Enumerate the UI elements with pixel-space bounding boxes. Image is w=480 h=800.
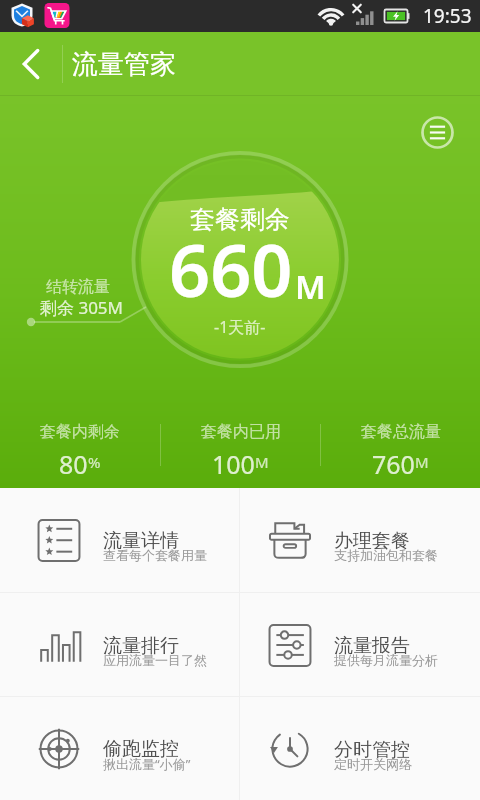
staticText: 80 [59, 447, 88, 474]
button[interactable]: 办理套餐 [240, 488, 480, 592]
staticText: 揪出流量“小偷” [103, 755, 191, 773]
staticText: 支持加油包和套餐 [334, 547, 438, 563]
staticText: 套餐内剩余 [40, 422, 120, 442]
button[interactable]: 流量详情 [0, 488, 239, 592]
button[interactable]: Menu [417, 112, 458, 153]
staticText: M [295, 264, 326, 309]
staticText: 分时管控 [334, 738, 410, 762]
staticText: 套餐总流量 [361, 422, 441, 442]
staticText: 剩余 305M [40, 296, 124, 319]
staticText: 套餐剩余 [190, 204, 290, 235]
staticText: 流量管家 [72, 48, 176, 81]
staticText: 查看每个套餐用量 [103, 547, 207, 563]
staticText: 流量详情 [103, 529, 179, 553]
staticText: 19:53 [423, 3, 472, 29]
staticText: % [88, 452, 101, 472]
staticText: -1天前- [214, 316, 266, 338]
button[interactable]: 套餐内剩余 [0, 422, 160, 474]
staticText: 100 [212, 447, 255, 474]
button[interactable]: 偷跑监控 [0, 697, 239, 800]
button[interactable]: 分时管控 [240, 697, 480, 800]
staticText: 流量报告 [334, 634, 410, 658]
button[interactable]: 流量报告 [240, 593, 480, 696]
staticText: 应用流量一目了然 [103, 652, 207, 668]
staticText: 办理套餐 [334, 529, 410, 553]
staticText: 660 [169, 220, 293, 318]
staticText: M [255, 452, 269, 472]
staticText: 流量排行 [103, 634, 179, 658]
button[interactable]: 套餐总流量 [321, 422, 480, 474]
staticText: 定时开关网络 [334, 756, 412, 772]
staticText: 偷跑监控 [103, 737, 179, 761]
staticText: 提供每月流量分析 [334, 652, 438, 668]
button[interactable]: Back [0, 32, 62, 96]
staticText: 结转流量 [46, 277, 110, 297]
button[interactable]: 套餐内已用 [161, 422, 320, 474]
staticText: 760 [372, 447, 415, 474]
staticText: M [415, 452, 429, 472]
button[interactable]: 流量排行 [0, 593, 239, 696]
staticText: 套餐内已用 [201, 422, 281, 442]
